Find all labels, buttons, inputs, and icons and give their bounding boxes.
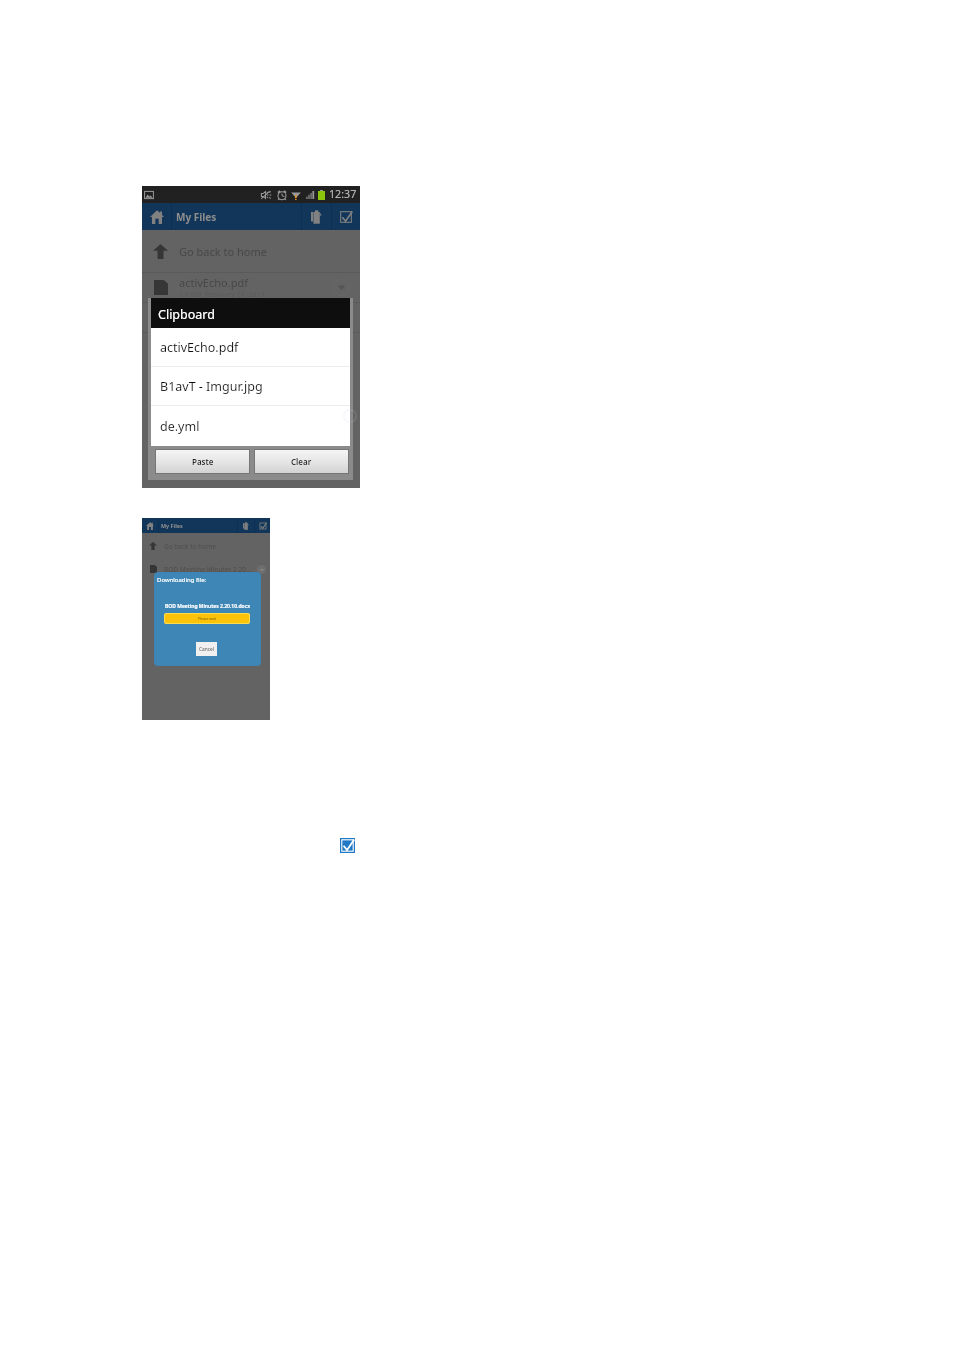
staticText: 2.8 MB February 27, 2013 [179, 290, 265, 300]
button[interactable]: de.yml [142, 333, 360, 362]
staticText: B1avT - Imgur.jpg [179, 305, 270, 320]
button[interactable]: Clear [255, 450, 348, 473]
staticText: Go back to home [179, 244, 267, 259]
button[interactable]: activEcho.pdf [142, 273, 360, 302]
button[interactable]: Select [332, 203, 360, 230]
button[interactable]: Go back to home [142, 230, 360, 272]
button[interactable]: Home [142, 518, 158, 533]
button[interactable]: B1avT - Imgur.jpg [151, 367, 350, 405]
button[interactable]: Select all [340, 838, 355, 853]
button[interactable]: activEcho.pdf [151, 328, 350, 366]
staticText: Go back to home [164, 542, 216, 551]
button[interactable]: Home [142, 203, 171, 230]
staticText: Please wait [164, 616, 250, 621]
staticText: BOD Meeting Minutes 2.20... [164, 565, 252, 574]
button[interactable]: Cancel [196, 642, 217, 656]
button[interactable]: de.yml [151, 406, 350, 446]
staticText: B1avT - Imgur.jpg [160, 378, 263, 395]
button[interactable]: Paste [156, 450, 249, 473]
button[interactable]: Go back to home [142, 533, 270, 559]
staticText: Paste [192, 456, 214, 467]
staticText: Clipboard [158, 306, 215, 323]
button[interactable]: Select [255, 518, 270, 533]
button[interactable]: More [257, 565, 266, 574]
staticText: de.yml [160, 418, 200, 435]
staticText: Downloading file: [157, 576, 207, 584]
button[interactable]: Clipboard [238, 518, 254, 533]
staticText: activEcho.pdf [160, 339, 239, 356]
staticText: Clear [291, 456, 312, 467]
staticText: My Files [161, 522, 183, 529]
staticText: BOD Meeting Minutes 2.20.10.docx [154, 603, 261, 610]
staticText: Cancel [199, 646, 214, 653]
staticText: 93.0 KB February 27, 2013 [179, 320, 267, 330]
button[interactable]: BOD Meeting Minutes 2.20... [142, 559, 270, 579]
staticText: My Files [176, 210, 217, 224]
button[interactable]: Clipboard [302, 203, 331, 230]
staticText: 1.0 KB February 27, 2013 [179, 350, 263, 360]
staticText: 12:37 [329, 187, 357, 202]
button[interactable]: B1avT - Imgur.jpg [142, 303, 360, 332]
button[interactable]: More options [333, 279, 350, 296]
staticText: activEcho.pdf [179, 275, 248, 290]
staticText: de.yml [179, 335, 214, 350]
